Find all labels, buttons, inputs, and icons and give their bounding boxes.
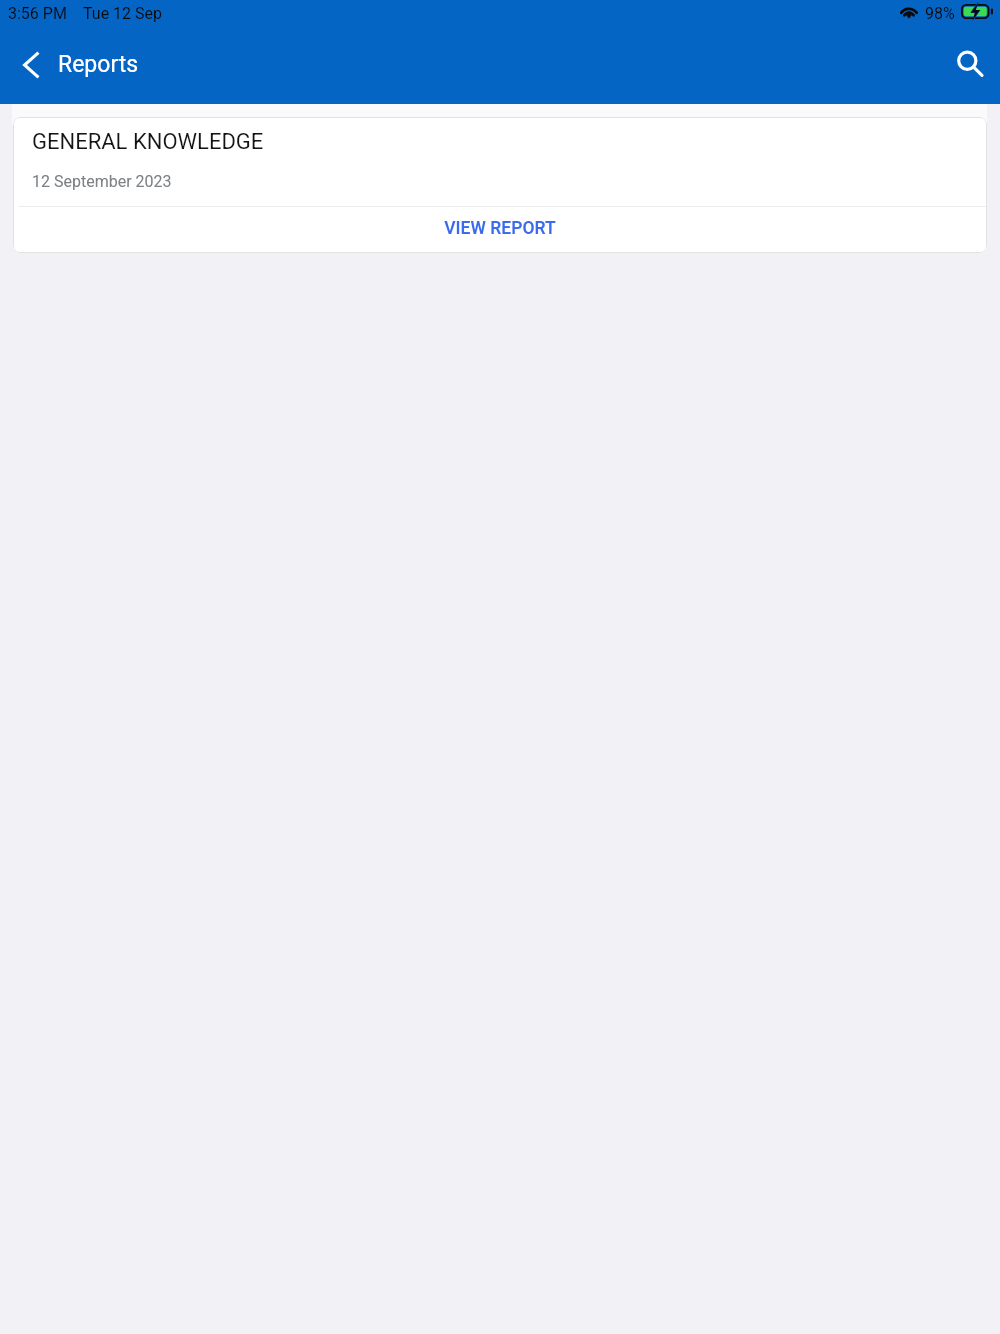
button[interactable]: GENERAL KNOWLEDGE — [13, 117, 987, 253]
staticText: Reports — [58, 51, 139, 78]
staticText: Tue 12 Sep — [83, 4, 162, 23]
staticText: 12 September 2023 — [32, 172, 172, 191]
button[interactable]: Search — [947, 41, 995, 89]
button[interactable]: Back — [7, 41, 55, 89]
staticText: 98% — [925, 4, 955, 23]
button[interactable]: VIEW REPORT — [13, 207, 987, 253]
staticText: GENERAL KNOWLEDGE — [32, 129, 264, 155]
staticText: VIEW REPORT — [444, 218, 556, 239]
staticText: 3:56 PM — [8, 4, 67, 23]
